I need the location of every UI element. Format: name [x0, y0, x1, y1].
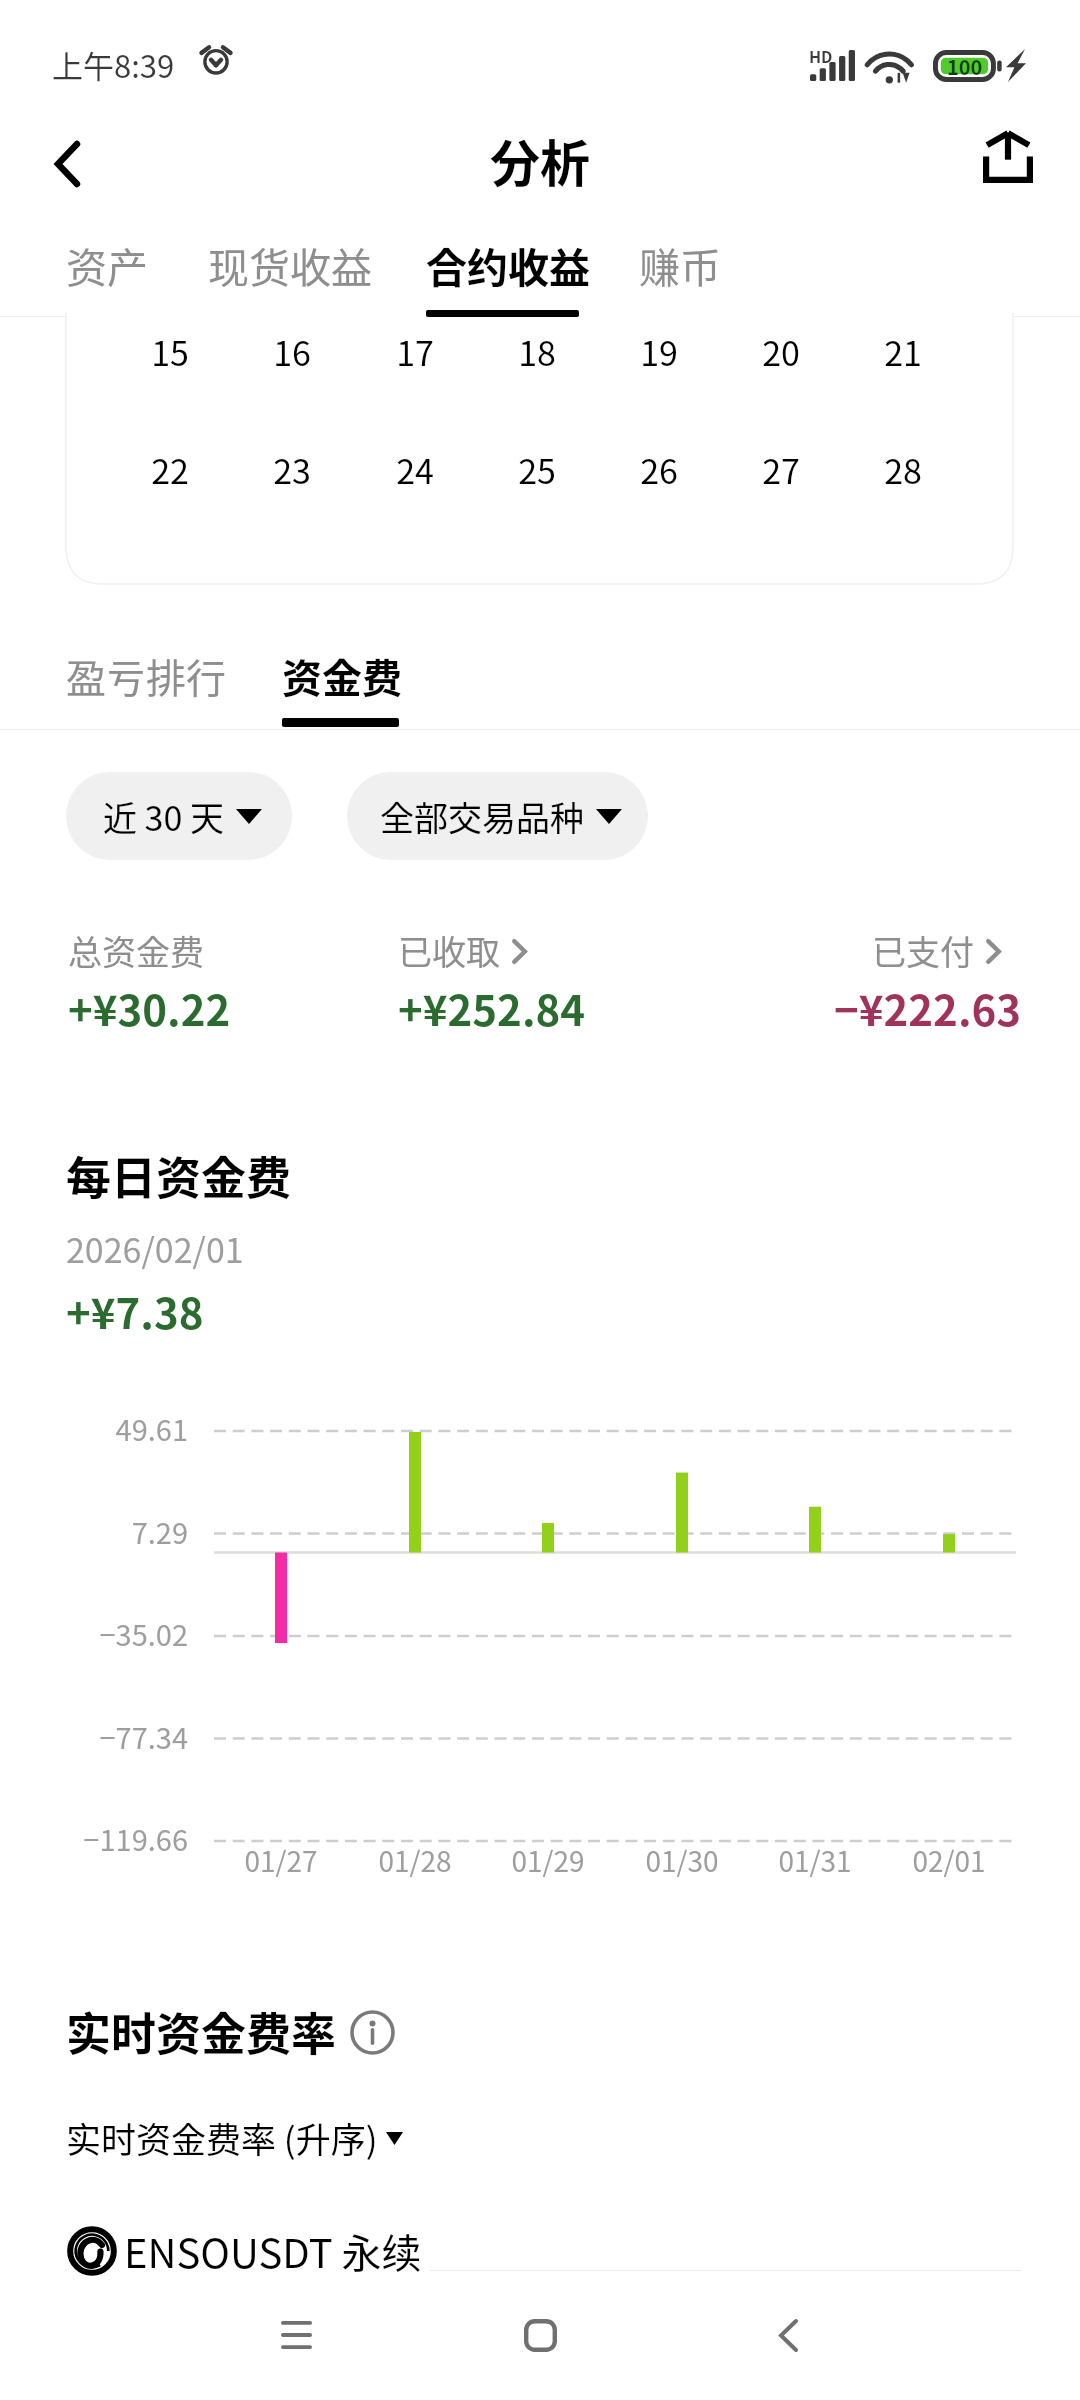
staticText: 20: [762, 327, 800, 376]
button[interactable]: ENSOUSDT 永续: [65, 2222, 422, 2280]
button[interactable]: Recents: [241, 2280, 351, 2390]
staticText: 资金费: [282, 647, 402, 705]
staticText: 总资金费: [68, 926, 204, 975]
staticText: 23: [273, 445, 311, 494]
staticText: 21: [884, 327, 922, 376]
button[interactable]: 已收取: [398, 926, 527, 975]
button[interactable]: 16: [252, 311, 332, 391]
button[interactable]: 全部交易品种: [347, 772, 648, 860]
staticText: 24: [396, 445, 434, 494]
button[interactable]: 17: [375, 311, 455, 391]
button[interactable]: 27: [741, 429, 821, 509]
staticText: 赚币: [639, 235, 721, 294]
button[interactable]: 21: [863, 311, 943, 391]
button[interactable]: 赚币: [623, 224, 737, 300]
staticText: 22: [151, 445, 189, 494]
staticText: +¥252.84: [398, 977, 586, 1038]
staticText: 上午8:39: [52, 42, 175, 87]
staticText: 100: [947, 52, 983, 81]
staticText: 每日资金费: [66, 1143, 292, 1208]
staticText: +¥7.38: [66, 1280, 204, 1341]
staticText: 02/01: [912, 1840, 986, 1881]
button[interactable]: 15: [130, 311, 210, 391]
button[interactable]: 23: [252, 429, 332, 509]
staticText: 18: [518, 327, 556, 376]
staticText: 49.61: [115, 1407, 188, 1449]
button[interactable]: 25: [497, 429, 577, 509]
staticText: 2026/02/01: [66, 1224, 244, 1273]
staticText: 实时资金费率 (升序): [66, 2112, 378, 2163]
staticText: 7.29: [131, 1510, 188, 1552]
staticText: 01/27: [244, 1840, 318, 1881]
staticText: 01/29: [511, 1840, 585, 1881]
staticText: 19: [640, 327, 678, 376]
staticText: +¥30.22: [68, 977, 231, 1038]
staticText: 01/28: [378, 1840, 452, 1881]
button[interactable]: Back: [733, 2280, 843, 2390]
button[interactable]: 实时资金费率 (升序): [50, 2112, 419, 2163]
button[interactable]: 28: [863, 429, 943, 509]
staticText: 25: [518, 445, 556, 494]
staticText: −35.02: [99, 1612, 188, 1654]
staticText: −77.34: [99, 1715, 188, 1757]
staticText: 17: [396, 327, 434, 376]
button[interactable]: 已支付: [872, 926, 1001, 975]
staticText: 近 30 天: [103, 792, 224, 841]
button[interactable]: Share: [968, 116, 1048, 196]
button[interactable]: 盈亏排行: [50, 636, 242, 712]
button[interactable]: 合约收益: [410, 224, 606, 300]
button[interactable]: 18: [497, 311, 577, 391]
staticText: 盈亏排行: [66, 647, 226, 705]
staticText: 全部交易品种: [380, 792, 584, 841]
staticText: 01/30: [645, 1840, 719, 1881]
staticText: 分析: [490, 124, 590, 196]
button[interactable]: 19: [619, 311, 699, 391]
button[interactable]: 资产: [50, 224, 164, 300]
button[interactable]: 20: [741, 311, 821, 391]
button[interactable]: 22: [130, 429, 210, 509]
button[interactable]: Back: [27, 124, 107, 204]
staticText: 15: [151, 327, 189, 376]
staticText: 16: [273, 327, 311, 376]
staticText: 合约收益: [426, 235, 590, 294]
staticText: ENSOUSDT 永续: [124, 2222, 422, 2280]
staticText: −119.66: [83, 1817, 188, 1859]
staticText: 01/31: [778, 1840, 852, 1881]
staticText: 实时资金费率: [66, 1999, 337, 2064]
button[interactable]: 24: [375, 429, 455, 509]
button[interactable]: 资金费: [266, 636, 418, 712]
staticText: 28: [884, 445, 922, 494]
button[interactable]: 近 30 天: [66, 772, 292, 860]
button[interactable]: Home: [485, 2280, 595, 2390]
staticText: −¥222.63: [834, 977, 1022, 1038]
staticText: HD: [809, 44, 833, 67]
staticText: 26: [640, 445, 678, 494]
staticText: 资产: [66, 235, 148, 294]
staticText: 已收取: [398, 926, 500, 975]
button[interactable]: Info: [349, 2009, 395, 2055]
button[interactable]: 26: [619, 429, 699, 509]
staticText: 现货收益: [208, 235, 372, 294]
staticText: 27: [762, 445, 800, 494]
staticText: 已支付: [872, 926, 974, 975]
button[interactable]: 现货收益: [192, 224, 388, 300]
